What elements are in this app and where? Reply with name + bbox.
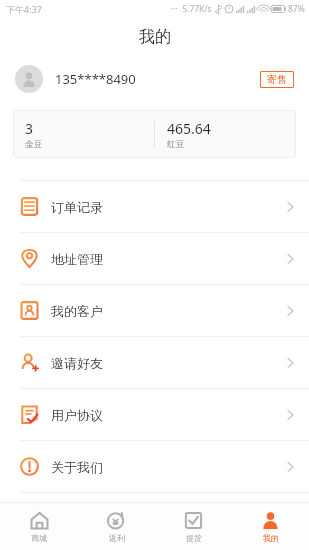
- button[interactable]: 135****8490: [0, 56, 309, 102]
- button[interactable]: 3: [13, 110, 154, 158]
- staticText: 关于我们: [51, 459, 103, 475]
- button[interactable]: 我的客户: [0, 285, 309, 336]
- button[interactable]: 商城: [0, 503, 78, 550]
- staticText: 465.64: [167, 119, 211, 138]
- button[interactable]: 465.64: [155, 110, 296, 158]
- staticText: 返利: [109, 533, 125, 543]
- staticText: 邀请好友: [51, 355, 103, 371]
- button[interactable]: 寄售: [260, 71, 294, 88]
- button[interactable]: 我的: [232, 503, 309, 550]
- button[interactable]: 返利: [78, 503, 155, 550]
- staticText: 金豆: [25, 139, 42, 150]
- staticText: 提货: [186, 533, 202, 543]
- button[interactable]: 订单记录: [0, 181, 309, 232]
- staticText: 下午4:37: [6, 3, 42, 15]
- staticText: 寄售: [267, 73, 287, 86]
- staticText: 135****8490: [55, 70, 136, 88]
- staticText: 商城: [31, 533, 47, 543]
- staticText: 我的: [263, 533, 279, 543]
- staticText: 订单记录: [51, 199, 103, 215]
- staticText: 用户协议: [51, 407, 103, 423]
- button[interactable]: 用户协议: [0, 389, 309, 440]
- staticText: 3: [25, 119, 34, 138]
- staticText: 我的客户: [51, 303, 103, 319]
- button[interactable]: 关于我们: [0, 441, 309, 492]
- button[interactable]: 邀请好友: [0, 337, 309, 388]
- button[interactable]: 地址管理: [0, 233, 309, 284]
- button[interactable]: 提货: [155, 503, 232, 550]
- staticText: 红豆: [167, 139, 184, 150]
- staticText: 地址管理: [51, 251, 103, 267]
- staticText: ··· 5.77K/s: [171, 3, 212, 15]
- staticText: 我的: [139, 27, 171, 47]
- staticText: 87%: [288, 3, 305, 15]
